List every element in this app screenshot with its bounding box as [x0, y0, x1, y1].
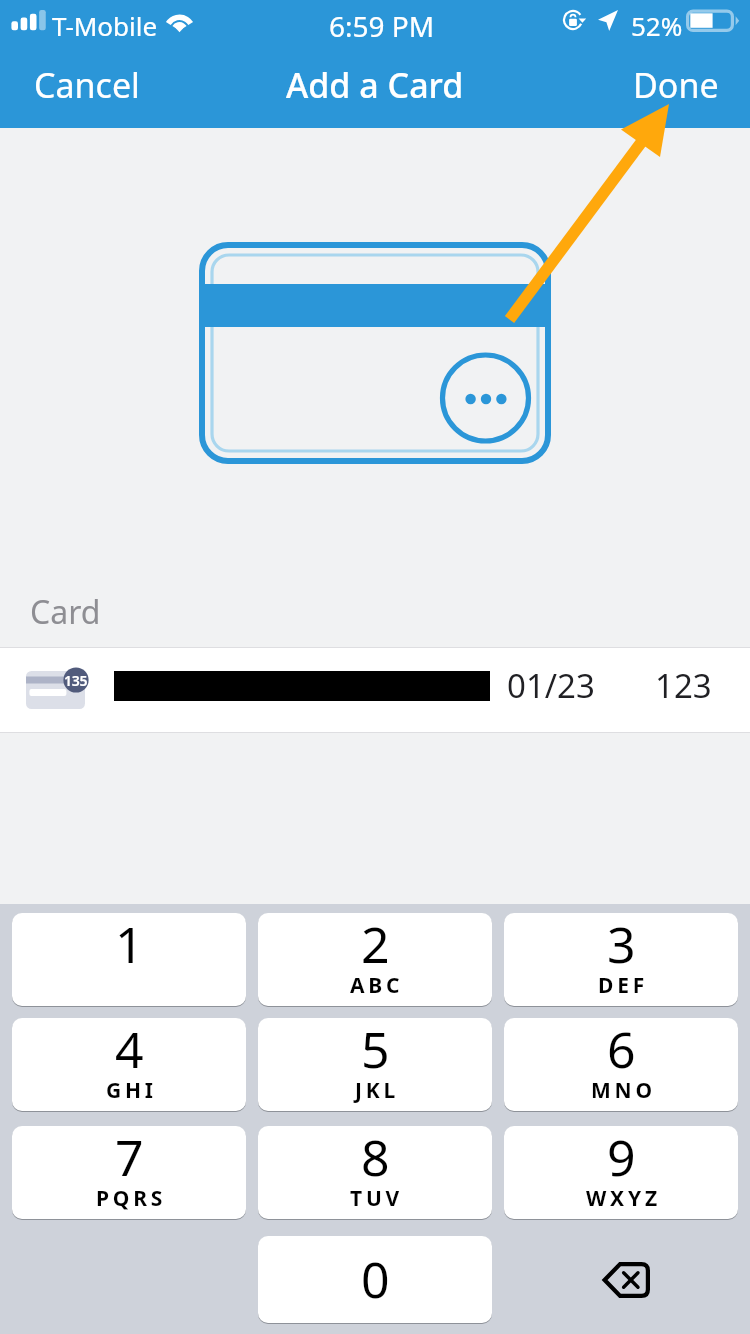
- staticText: ABC: [350, 971, 404, 1000]
- staticText: 135: [64, 671, 88, 690]
- staticText: T-Mobile: [52, 8, 158, 43]
- staticText: 6:59 PM: [329, 7, 435, 45]
- button[interactable]: Delete: [509, 1236, 743, 1323]
- button[interactable]: 1: [12, 913, 246, 1006]
- staticText: 6: [607, 1018, 636, 1083]
- button[interactable]: 5: [258, 1018, 492, 1111]
- button[interactable]: 3: [504, 913, 738, 1006]
- staticText: 123: [655, 663, 712, 708]
- button[interactable]: 6: [504, 1018, 738, 1111]
- staticText: Cancel: [34, 62, 140, 108]
- button[interactable]: 4: [12, 1018, 246, 1111]
- button[interactable]: 8: [258, 1126, 492, 1219]
- staticText: 5: [361, 1018, 390, 1083]
- staticText: PQRS: [96, 1184, 167, 1213]
- staticText: 01/23: [507, 663, 595, 708]
- button[interactable]: Done: [619, 50, 733, 120]
- staticText: DEF: [598, 971, 649, 1000]
- staticText: WXYZ: [586, 1184, 661, 1213]
- button[interactable]: Cancel: [20, 50, 154, 120]
- staticText: 52%: [631, 8, 683, 43]
- staticText: 4: [115, 1018, 144, 1083]
- staticText: TUV: [350, 1184, 404, 1213]
- button[interactable]: 135: [0, 647, 750, 733]
- staticText: MNO: [591, 1076, 656, 1105]
- staticText: GHI: [106, 1076, 157, 1105]
- staticText: 8: [361, 1126, 390, 1191]
- staticText: 7: [115, 1126, 144, 1191]
- button[interactable]: 7: [12, 1126, 246, 1219]
- button[interactable]: 0: [258, 1236, 492, 1323]
- staticText: 2: [361, 913, 390, 978]
- staticText: 3: [607, 913, 636, 978]
- staticText: 1: [115, 913, 144, 978]
- staticText: JKL: [355, 1076, 400, 1105]
- button[interactable]: 9: [504, 1126, 738, 1219]
- staticText: 0: [361, 1245, 390, 1313]
- staticText: Card: [30, 590, 101, 634]
- staticText: Done: [633, 62, 719, 108]
- staticText: Add a Card: [286, 62, 464, 108]
- button[interactable]: 2: [258, 913, 492, 1006]
- staticText: 9: [607, 1126, 636, 1191]
